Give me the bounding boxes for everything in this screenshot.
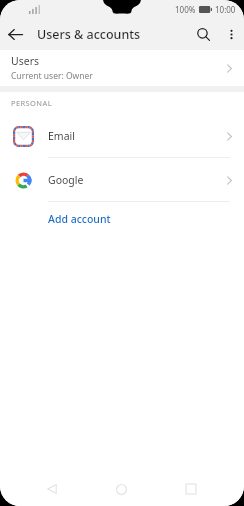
button[interactable]: Users bbox=[0, 50, 244, 86]
staticText: Current user: Owner bbox=[11, 70, 93, 82]
button[interactable]: Home bbox=[104, 472, 138, 506]
button[interactable]: Email bbox=[0, 114, 244, 158]
button[interactable]: Recent apps bbox=[174, 472, 208, 506]
staticText: PERSONAL bbox=[11, 98, 52, 108]
staticText: Users bbox=[11, 54, 39, 68]
staticText: 10:00 bbox=[215, 4, 236, 15]
staticText: Add account bbox=[48, 212, 111, 226]
button[interactable]: Add account bbox=[0, 202, 244, 236]
button[interactable]: Back bbox=[35, 472, 69, 506]
staticText: Email bbox=[48, 129, 75, 143]
button[interactable]: Back bbox=[0, 19, 30, 49]
staticText: Google bbox=[48, 173, 84, 187]
staticText: Users & accounts bbox=[37, 26, 141, 43]
button[interactable]: More options bbox=[218, 21, 244, 47]
button[interactable]: Google bbox=[0, 158, 244, 202]
button[interactable]: Search bbox=[188, 19, 218, 49]
staticText: 100% bbox=[175, 4, 196, 15]
